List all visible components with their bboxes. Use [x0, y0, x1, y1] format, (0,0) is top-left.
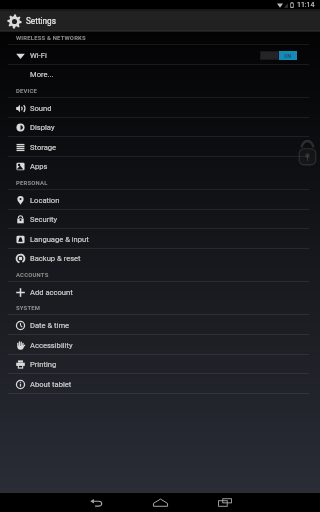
button[interactable]: Location: [0, 190, 320, 210]
button[interactable]: Accessibility: [0, 335, 320, 355]
staticText: Printing: [30, 360, 57, 369]
button[interactable]: Wi-Fi on: [260, 45, 297, 65]
button[interactable]: Apps: [0, 156, 320, 176]
button[interactable]: Wi-Fi: [0, 45, 320, 65]
staticText: About tablet: [30, 380, 72, 389]
staticText: Sound: [30, 104, 52, 113]
button[interactable]: Home: [144, 493, 176, 512]
staticText: Add account: [30, 288, 73, 297]
staticText: PERSONAL: [16, 180, 48, 187]
staticText: Accessibility: [30, 341, 73, 350]
button[interactable]: Add account: [0, 282, 320, 302]
staticText: Date & time: [30, 321, 70, 330]
staticText: Backup & reset: [30, 254, 81, 263]
button[interactable]: About tablet: [0, 374, 320, 394]
staticText: More...: [30, 70, 54, 79]
staticText: Display: [30, 123, 55, 132]
button[interactable]: Security: [0, 209, 320, 229]
staticText: Language & input: [30, 235, 89, 244]
staticText: Wi-Fi: [30, 51, 47, 60]
staticText: ON: [284, 53, 292, 59]
button[interactable]: Date & time: [0, 315, 320, 335]
staticText: Location: [30, 196, 60, 205]
button[interactable]: Storage: [0, 137, 320, 157]
button[interactable]: Language & input: [0, 229, 320, 249]
button[interactable]: Display: [0, 117, 320, 137]
button[interactable]: Sound: [0, 98, 320, 118]
staticText: SYSTEM: [16, 305, 41, 312]
button[interactable]: Recent apps: [209, 493, 241, 512]
staticText: Apps: [30, 162, 48, 171]
button[interactable]: More...: [0, 64, 320, 84]
staticText: ACCOUNTS: [16, 272, 49, 279]
button[interactable]: Printing: [0, 354, 320, 374]
staticText: DEVICE: [16, 88, 38, 95]
staticText: Storage: [30, 143, 57, 152]
button[interactable]: Backup & reset: [0, 248, 320, 268]
staticText: Settings: [26, 16, 56, 26]
staticText: Security: [30, 215, 58, 224]
staticText: WIRELESS & NETWORKS: [16, 35, 86, 42]
button[interactable]: Back: [80, 493, 112, 512]
staticText: 11:14: [297, 1, 315, 9]
